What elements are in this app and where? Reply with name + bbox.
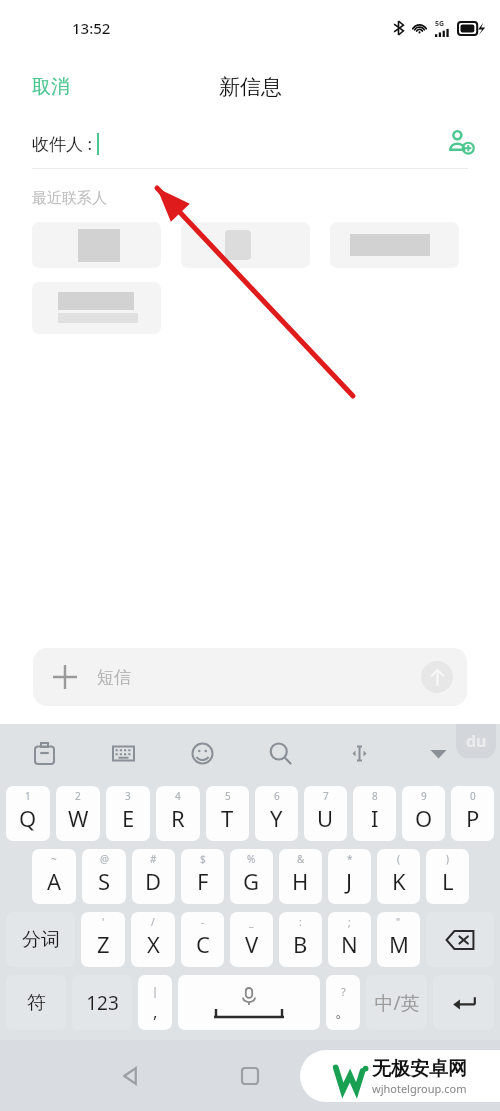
button[interactable]: Back	[110, 1056, 150, 1096]
button[interactable]: "	[377, 912, 420, 967]
staticText: -	[201, 915, 205, 929]
button[interactable]: Enter	[433, 975, 494, 1030]
button[interactable]: '	[81, 912, 125, 967]
staticText: @	[100, 852, 109, 866]
button[interactable]: 4	[156, 786, 200, 841]
button[interactable]: 2	[56, 786, 100, 841]
button[interactable]: 8	[353, 786, 396, 841]
staticText: 中/英	[374, 990, 420, 1016]
button[interactable]: 3	[106, 786, 150, 841]
button[interactable]: ~	[32, 849, 76, 904]
staticText: 2	[75, 789, 81, 803]
staticText: du	[466, 730, 487, 752]
button[interactable]: 0	[451, 786, 494, 841]
button[interactable]: Add contact	[440, 122, 482, 164]
button[interactable]: _	[230, 912, 273, 967]
button[interactable]: 6	[255, 786, 298, 841]
button[interactable]	[330, 222, 459, 268]
staticText: 1	[25, 789, 31, 803]
button[interactable]: 5	[206, 786, 249, 841]
staticText: O	[415, 803, 433, 833]
staticText: W	[68, 803, 89, 833]
button[interactable]: ?	[326, 975, 360, 1030]
staticText: 13:52	[72, 18, 111, 38]
staticText: 3	[125, 789, 131, 803]
button[interactable]: Clipboard	[22, 731, 66, 775]
button[interactable]: Keyboard	[101, 731, 145, 775]
staticText: 5G	[435, 19, 445, 29]
button[interactable]: (	[377, 849, 420, 904]
staticText: M	[389, 929, 409, 959]
button[interactable]: 中/英	[366, 975, 427, 1030]
staticText: P	[466, 803, 480, 833]
button[interactable]: *	[328, 849, 371, 904]
staticText: G	[243, 866, 260, 896]
button[interactable]: Hide keyboard	[416, 731, 460, 775]
staticText: 收件人 :	[32, 132, 92, 155]
button[interactable]: 123	[72, 975, 132, 1030]
staticText: R	[171, 803, 185, 833]
staticText: 7	[323, 789, 329, 803]
staticText: 符	[27, 991, 46, 1015]
button[interactable]: ;	[328, 912, 371, 967]
button[interactable]: )	[426, 849, 469, 904]
staticText: wjhotelgroup.com	[372, 1081, 467, 1096]
button[interactable]: -	[181, 912, 224, 967]
button[interactable]: 符	[6, 975, 66, 1030]
staticText: I	[371, 803, 379, 833]
staticText: "	[396, 915, 401, 929]
staticText: )	[446, 852, 449, 866]
staticText: :	[299, 915, 302, 929]
button[interactable]: 1	[6, 786, 50, 841]
button[interactable]: Send	[421, 661, 453, 693]
button[interactable]: &	[279, 849, 322, 904]
staticText: B	[293, 929, 308, 959]
staticText: A	[47, 866, 62, 896]
staticText: _	[249, 915, 254, 929]
staticText: $	[200, 852, 206, 866]
button[interactable]: Search	[258, 731, 302, 775]
button[interactable]: 取消	[0, 65, 102, 109]
button[interactable]: @	[82, 849, 126, 904]
button[interactable]: 9	[402, 786, 445, 841]
staticText: 新信息	[219, 74, 282, 100]
button[interactable]: /	[131, 912, 175, 967]
staticText: T	[221, 803, 234, 833]
staticText: ,	[153, 1000, 158, 1023]
button[interactable]: Recents	[230, 1056, 270, 1096]
staticText: E	[122, 803, 135, 833]
button[interactable]: :	[279, 912, 322, 967]
staticText: 分词	[22, 928, 60, 952]
button[interactable]: 7	[304, 786, 347, 841]
staticText: F	[197, 866, 209, 896]
staticText: Q	[19, 803, 37, 833]
staticText: 无极安卓网	[372, 1057, 467, 1081]
button[interactable]: Cursor	[337, 731, 381, 775]
button[interactable]: Backspace	[426, 912, 494, 967]
staticText: 。	[335, 1001, 352, 1022]
staticText: '	[102, 915, 105, 929]
button[interactable]: Space	[178, 975, 320, 1030]
button[interactable]: 分词	[6, 912, 75, 967]
staticText: L	[442, 866, 454, 896]
button[interactable]: %	[230, 849, 273, 904]
staticText: S	[98, 866, 111, 896]
staticText: 123	[86, 990, 119, 1016]
button[interactable]	[32, 222, 161, 268]
staticText: Y	[270, 803, 283, 833]
button[interactable]: #	[132, 849, 175, 904]
staticText: ?	[341, 984, 346, 999]
staticText: D	[145, 866, 162, 896]
staticText: Z	[97, 929, 110, 959]
button[interactable]: 短信	[33, 648, 467, 706]
button[interactable]: Emoji	[180, 731, 224, 775]
staticText: %	[247, 852, 256, 866]
button[interactable]	[181, 222, 310, 268]
button[interactable]: $	[181, 849, 224, 904]
staticText: H	[292, 866, 309, 896]
button[interactable]: |	[138, 975, 172, 1030]
staticText: 9	[421, 789, 427, 803]
staticText: N	[341, 929, 358, 959]
staticText: X	[147, 929, 160, 959]
button[interactable]	[32, 282, 161, 334]
